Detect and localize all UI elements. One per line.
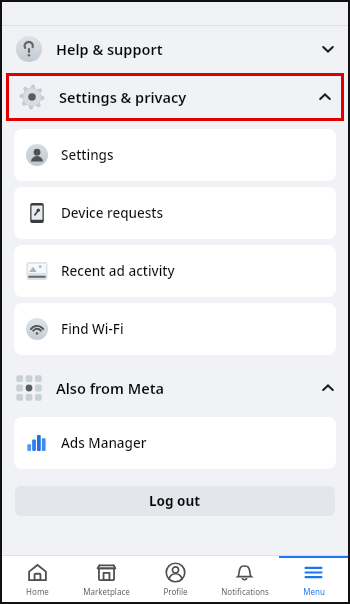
button[interactable]: Settings & privacy [9,76,341,118]
staticText: Menu [303,586,325,597]
button[interactable]: Home [2,556,72,602]
button[interactable]: Menu [279,556,348,602]
staticText: Settings & privacy [59,87,187,107]
button[interactable]: Notifications [210,556,279,602]
button[interactable]: Log out [15,486,335,516]
button[interactable]: Also from Meta [2,365,348,411]
button[interactable]: Help & support [2,26,348,72]
button[interactable]: Marketplace [72,556,141,602]
staticText: Device requests [61,204,164,222]
button[interactable]: Settings [14,129,336,181]
staticText: Profile [163,586,188,597]
staticText: Ads Manager [61,434,147,452]
staticText: Notifications [221,586,269,597]
staticText: Find Wi-Fi [61,320,124,338]
staticText: Settings [61,146,114,164]
staticText: Also from Meta [56,378,165,398]
button[interactable]: Recent ad activity [14,245,336,297]
staticText: Recent ad activity [61,262,175,280]
button[interactable]: Ads Manager [14,417,336,469]
staticText: Marketplace [83,586,130,597]
button[interactable]: Profile [141,556,210,602]
button[interactable]: Device requests [14,187,336,239]
staticText: Help & support [56,39,163,59]
staticText: Log out [149,492,201,510]
button[interactable]: Find Wi-Fi [14,303,336,355]
staticText: Home [26,586,49,597]
